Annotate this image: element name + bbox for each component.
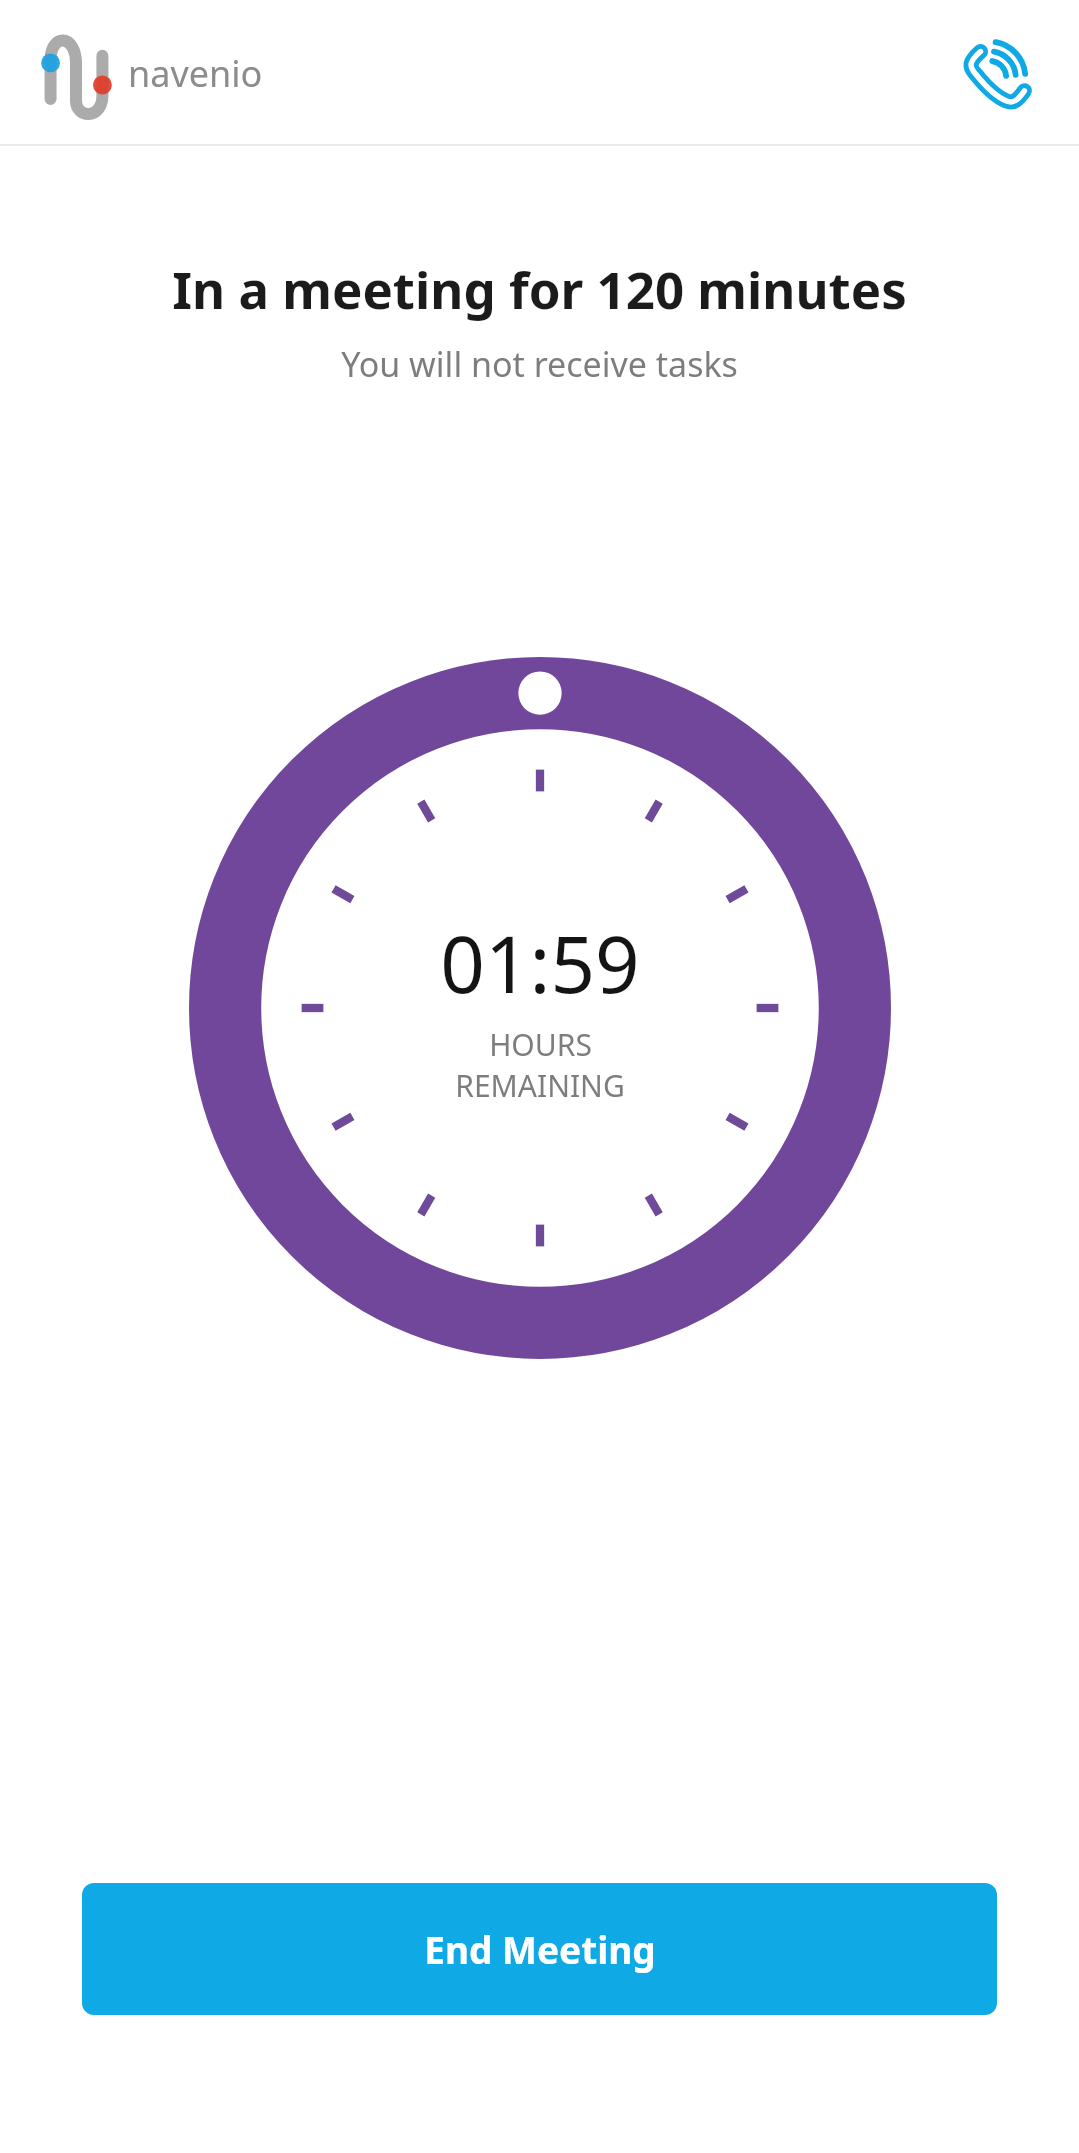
staticText: navenio (128, 49, 263, 98)
staticText: REMAINING (455, 1065, 625, 1106)
staticText: HOURS (489, 1024, 592, 1065)
staticText: In a meeting for 120 minutes (172, 254, 907, 323)
staticText: 01:59 (440, 910, 640, 1016)
button[interactable]: Call (941, 18, 1051, 128)
staticText: End Meeting (424, 1924, 656, 1974)
button[interactable]: navenio (28, 25, 263, 121)
staticText: You will not receive tasks (341, 341, 738, 387)
button[interactable]: End Meeting (82, 1883, 997, 2015)
